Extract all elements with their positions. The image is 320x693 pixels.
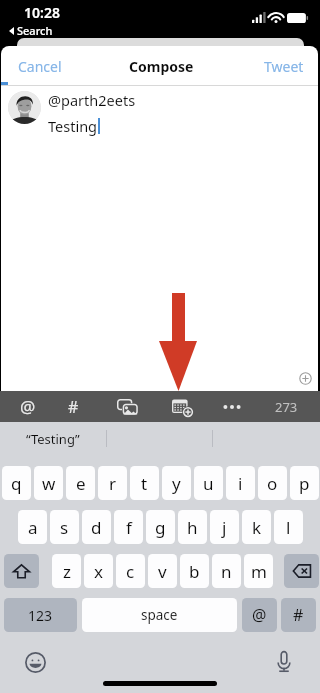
staticText: y bbox=[172, 472, 181, 495]
button[interactable]: n bbox=[212, 554, 241, 588]
staticText: @ bbox=[252, 604, 267, 626]
button[interactable]: Add GIF bbox=[162, 391, 202, 422]
staticText: @parth2eets bbox=[48, 90, 136, 110]
button[interactable]: x bbox=[84, 554, 113, 588]
staticText: 10:28 bbox=[24, 3, 60, 22]
button[interactable]: a bbox=[18, 510, 47, 544]
button[interactable]: # bbox=[281, 598, 316, 632]
staticText: m bbox=[251, 560, 267, 583]
button[interactable]: i bbox=[226, 466, 255, 500]
staticText: i bbox=[238, 472, 243, 495]
button[interactable]: q bbox=[2, 466, 31, 500]
staticText: Search bbox=[17, 23, 53, 38]
button[interactable]: l bbox=[274, 510, 303, 544]
button[interactable]: p bbox=[290, 466, 319, 500]
button[interactable]: Back to Search bbox=[9, 23, 53, 38]
staticText: e bbox=[76, 472, 86, 495]
staticText: @ bbox=[20, 395, 36, 418]
staticText: q bbox=[11, 472, 22, 495]
button[interactable]: More options bbox=[212, 391, 252, 422]
button[interactable]: c bbox=[116, 554, 145, 588]
button[interactable]: s bbox=[50, 510, 79, 544]
staticText: o bbox=[267, 472, 278, 495]
button[interactable]: y bbox=[162, 466, 191, 500]
button[interactable]: f bbox=[114, 510, 143, 544]
button[interactable]: @ bbox=[242, 598, 277, 632]
staticText: # bbox=[293, 604, 304, 626]
button[interactable]: Dictation bbox=[272, 650, 296, 674]
button[interactable]: v bbox=[148, 554, 177, 588]
button[interactable]: w bbox=[34, 466, 63, 500]
staticText: l bbox=[286, 516, 291, 539]
button[interactable]: Backspace bbox=[284, 554, 319, 588]
staticText: b bbox=[189, 560, 200, 583]
button[interactable]: space bbox=[82, 598, 237, 632]
button[interactable]: Shift bbox=[4, 554, 39, 588]
staticText: Cancel bbox=[18, 57, 62, 76]
button[interactable]: t bbox=[130, 466, 159, 500]
button[interactable]: u bbox=[194, 466, 223, 500]
staticText: v bbox=[158, 560, 167, 583]
button[interactable]: h bbox=[178, 510, 207, 544]
staticText: 123 bbox=[28, 606, 53, 625]
button[interactable]: e bbox=[66, 466, 95, 500]
staticText: g bbox=[155, 516, 166, 539]
staticText: k bbox=[252, 516, 262, 539]
button[interactable]: 123 bbox=[4, 598, 77, 632]
button[interactable]: Cancel bbox=[1, 46, 75, 86]
button[interactable]: o bbox=[258, 466, 287, 500]
staticText: Testing bbox=[48, 116, 98, 136]
button[interactable]: m bbox=[244, 554, 273, 588]
staticText: c bbox=[126, 560, 135, 583]
staticText: r bbox=[109, 472, 117, 495]
staticText: d bbox=[91, 516, 102, 539]
button[interactable]: Tweet bbox=[251, 46, 318, 86]
button[interactable]: r bbox=[98, 466, 127, 500]
staticText: h bbox=[187, 516, 198, 539]
button[interactable]: Add bbox=[299, 372, 312, 385]
staticText: s bbox=[60, 516, 69, 539]
staticText: t bbox=[141, 472, 148, 495]
button[interactable]: z bbox=[52, 554, 81, 588]
button[interactable]: b bbox=[180, 554, 209, 588]
staticText: a bbox=[28, 516, 38, 539]
staticText: x bbox=[94, 560, 103, 583]
staticText: j bbox=[222, 516, 227, 539]
button[interactable]: Emoji bbox=[23, 650, 47, 674]
button[interactable]: j bbox=[210, 510, 239, 544]
staticText: Tweet bbox=[264, 57, 304, 76]
staticText: space bbox=[141, 606, 178, 624]
staticText: 273 bbox=[275, 398, 298, 416]
button[interactable]: Mention bbox=[8, 391, 48, 422]
staticText: f bbox=[126, 516, 132, 539]
button[interactable]: d bbox=[82, 510, 111, 544]
staticText: w bbox=[42, 472, 56, 495]
button[interactable]: “Testing” bbox=[0, 422, 106, 455]
button[interactable]: k bbox=[242, 510, 271, 544]
staticText: n bbox=[221, 560, 232, 583]
staticText: z bbox=[63, 560, 71, 583]
button[interactable]: g bbox=[146, 510, 175, 544]
button[interactable]: Add photo bbox=[107, 391, 147, 422]
staticText: # bbox=[68, 396, 79, 418]
staticText: u bbox=[203, 472, 214, 495]
button[interactable]: Hashtag bbox=[53, 391, 93, 422]
staticText: Compose bbox=[129, 57, 194, 76]
staticText: p bbox=[299, 472, 310, 495]
staticText: “Testing” bbox=[26, 430, 80, 448]
